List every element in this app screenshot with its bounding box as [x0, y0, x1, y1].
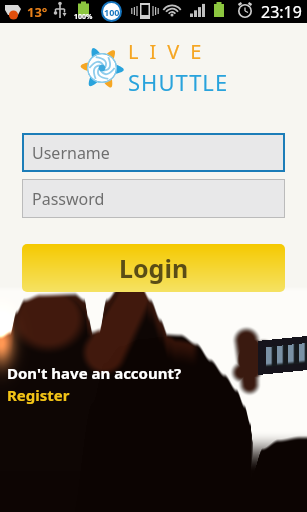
button[interactable]: Username: [22, 133, 285, 172]
button[interactable]: Password: [22, 179, 285, 218]
staticText: Don't have an account?: [7, 363, 182, 383]
staticText: Login: [119, 251, 189, 285]
staticText: Username: [32, 142, 110, 164]
staticText: Register: [7, 385, 70, 405]
staticText: Password: [32, 188, 105, 210]
staticText: 100: [104, 6, 120, 18]
staticText: LIVE: [128, 38, 213, 65]
staticText: 100%: [74, 12, 93, 22]
staticText: 13°: [27, 3, 48, 21]
button[interactable]: Register: [7, 385, 70, 405]
button[interactable]: Login: [22, 244, 285, 292]
staticText: SHUTTLE: [128, 67, 229, 97]
staticText: 23:19: [261, 1, 302, 23]
